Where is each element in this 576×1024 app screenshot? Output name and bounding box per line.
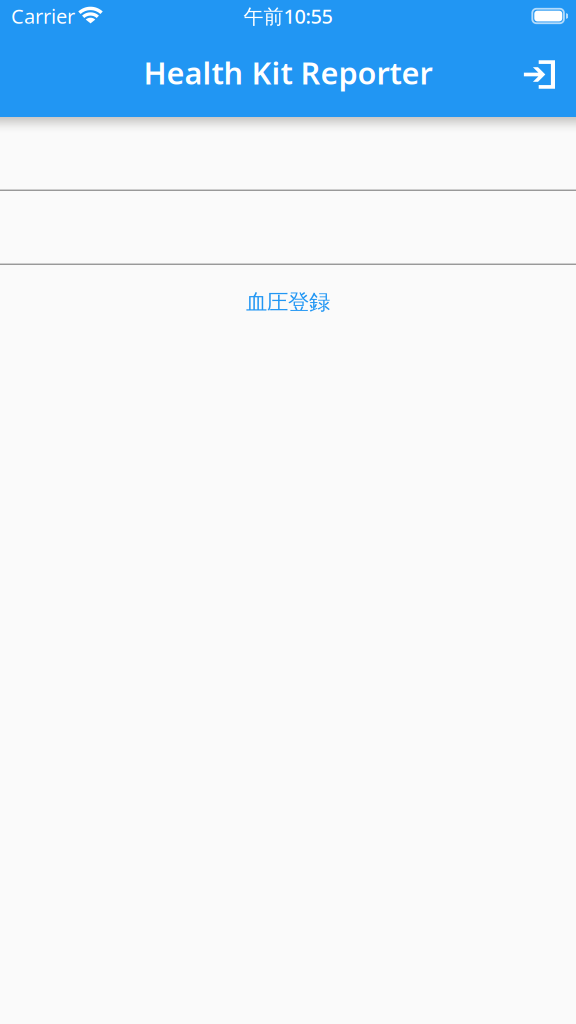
staticText: Health Kit Reporter — [143, 52, 432, 93]
staticText: 血圧登録 — [246, 289, 330, 315]
button[interactable]: Sign in — [510, 46, 568, 103]
button[interactable]: Systolic blood pressure — [0, 117, 576, 191]
staticText: 午前10:55 — [243, 3, 332, 29]
staticText: Carrier — [11, 3, 75, 29]
button[interactable]: 血圧登録 — [0, 265, 576, 327]
button[interactable]: Diastolic blood pressure — [0, 191, 576, 265]
